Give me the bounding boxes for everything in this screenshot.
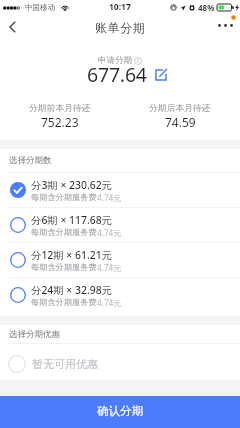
staticText: 分12期 × 61.21元 (31, 248, 113, 262)
staticText: 选择分期数 (9, 155, 52, 166)
staticText: 4.74元 (97, 227, 122, 238)
button[interactable]: More options (218, 24, 233, 27)
staticText: 4.74元 (97, 262, 122, 273)
staticText: 分期后本月待还 (149, 103, 211, 114)
staticText: 暂无可用优惠 (32, 357, 98, 371)
staticText: 每期含分期服务费 (31, 297, 97, 307)
staticText: 10:17 (109, 1, 131, 13)
staticText: 申请分期 (98, 55, 132, 66)
staticText: 每期含分期服务费 (31, 192, 97, 202)
button[interactable]: Back (0, 14, 24, 40)
staticText: 分期前本月待还 (29, 103, 91, 114)
button[interactable]: 分12期 × 61.21元 (0, 243, 240, 277)
staticText: 74.59 (165, 114, 196, 130)
button[interactable]: 确认分期 (0, 396, 240, 428)
button[interactable]: Edit amount (155, 69, 167, 81)
staticText: 48% (198, 2, 215, 13)
staticText: 677.64 (87, 61, 147, 88)
staticText: 752.23 (41, 114, 79, 130)
staticText: 中国移动 (25, 3, 55, 12)
staticText: 账单分期 (95, 20, 146, 35)
staticText: 分3期 × 230.62元 (31, 178, 113, 192)
staticText: 4.74元 (97, 297, 122, 308)
staticText: 选择分期优惠 (9, 329, 60, 340)
staticText: 每期含分期服务费 (31, 262, 97, 272)
button[interactable]: 暂无可用优惠 (0, 344, 240, 380)
staticText: 每期含分期服务费 (31, 227, 97, 237)
staticText: 分24期 × 32.98元 (31, 283, 113, 297)
staticText: 分6期 × 117.68元 (31, 213, 113, 227)
button[interactable]: 分24期 × 32.98元 (0, 278, 240, 312)
button[interactable]: 分6期 × 117.68元 (0, 208, 240, 242)
button[interactable]: 分3期 × 230.62元 (0, 173, 240, 207)
staticText: 4.74元 (97, 192, 122, 203)
staticText: 确认分期 (97, 404, 143, 418)
